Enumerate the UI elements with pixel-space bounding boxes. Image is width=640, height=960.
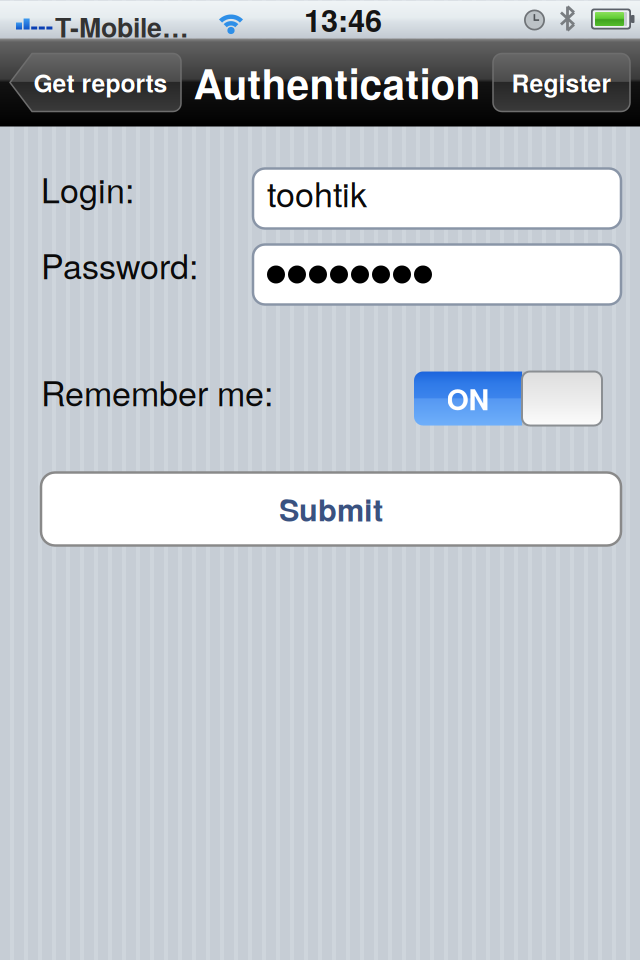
button[interactable]: ON xyxy=(414,371,602,425)
button[interactable]: Register xyxy=(493,53,630,111)
staticText: Authentication xyxy=(193,53,480,112)
staticText: Submit xyxy=(279,487,383,531)
button[interactable]: Get reports xyxy=(10,53,181,111)
staticText: 13:46 xyxy=(304,0,382,41)
staticText: toohtik xyxy=(267,168,367,217)
staticText: Password: xyxy=(41,240,198,289)
staticText: Get reports xyxy=(33,65,167,100)
staticText: ON xyxy=(446,378,489,419)
button[interactable]: Submit xyxy=(41,472,621,545)
staticText: T-Mobile… xyxy=(55,7,189,46)
staticText: Remember me: xyxy=(41,367,273,416)
staticText: Register xyxy=(511,65,611,100)
staticText: Login: xyxy=(41,164,134,213)
